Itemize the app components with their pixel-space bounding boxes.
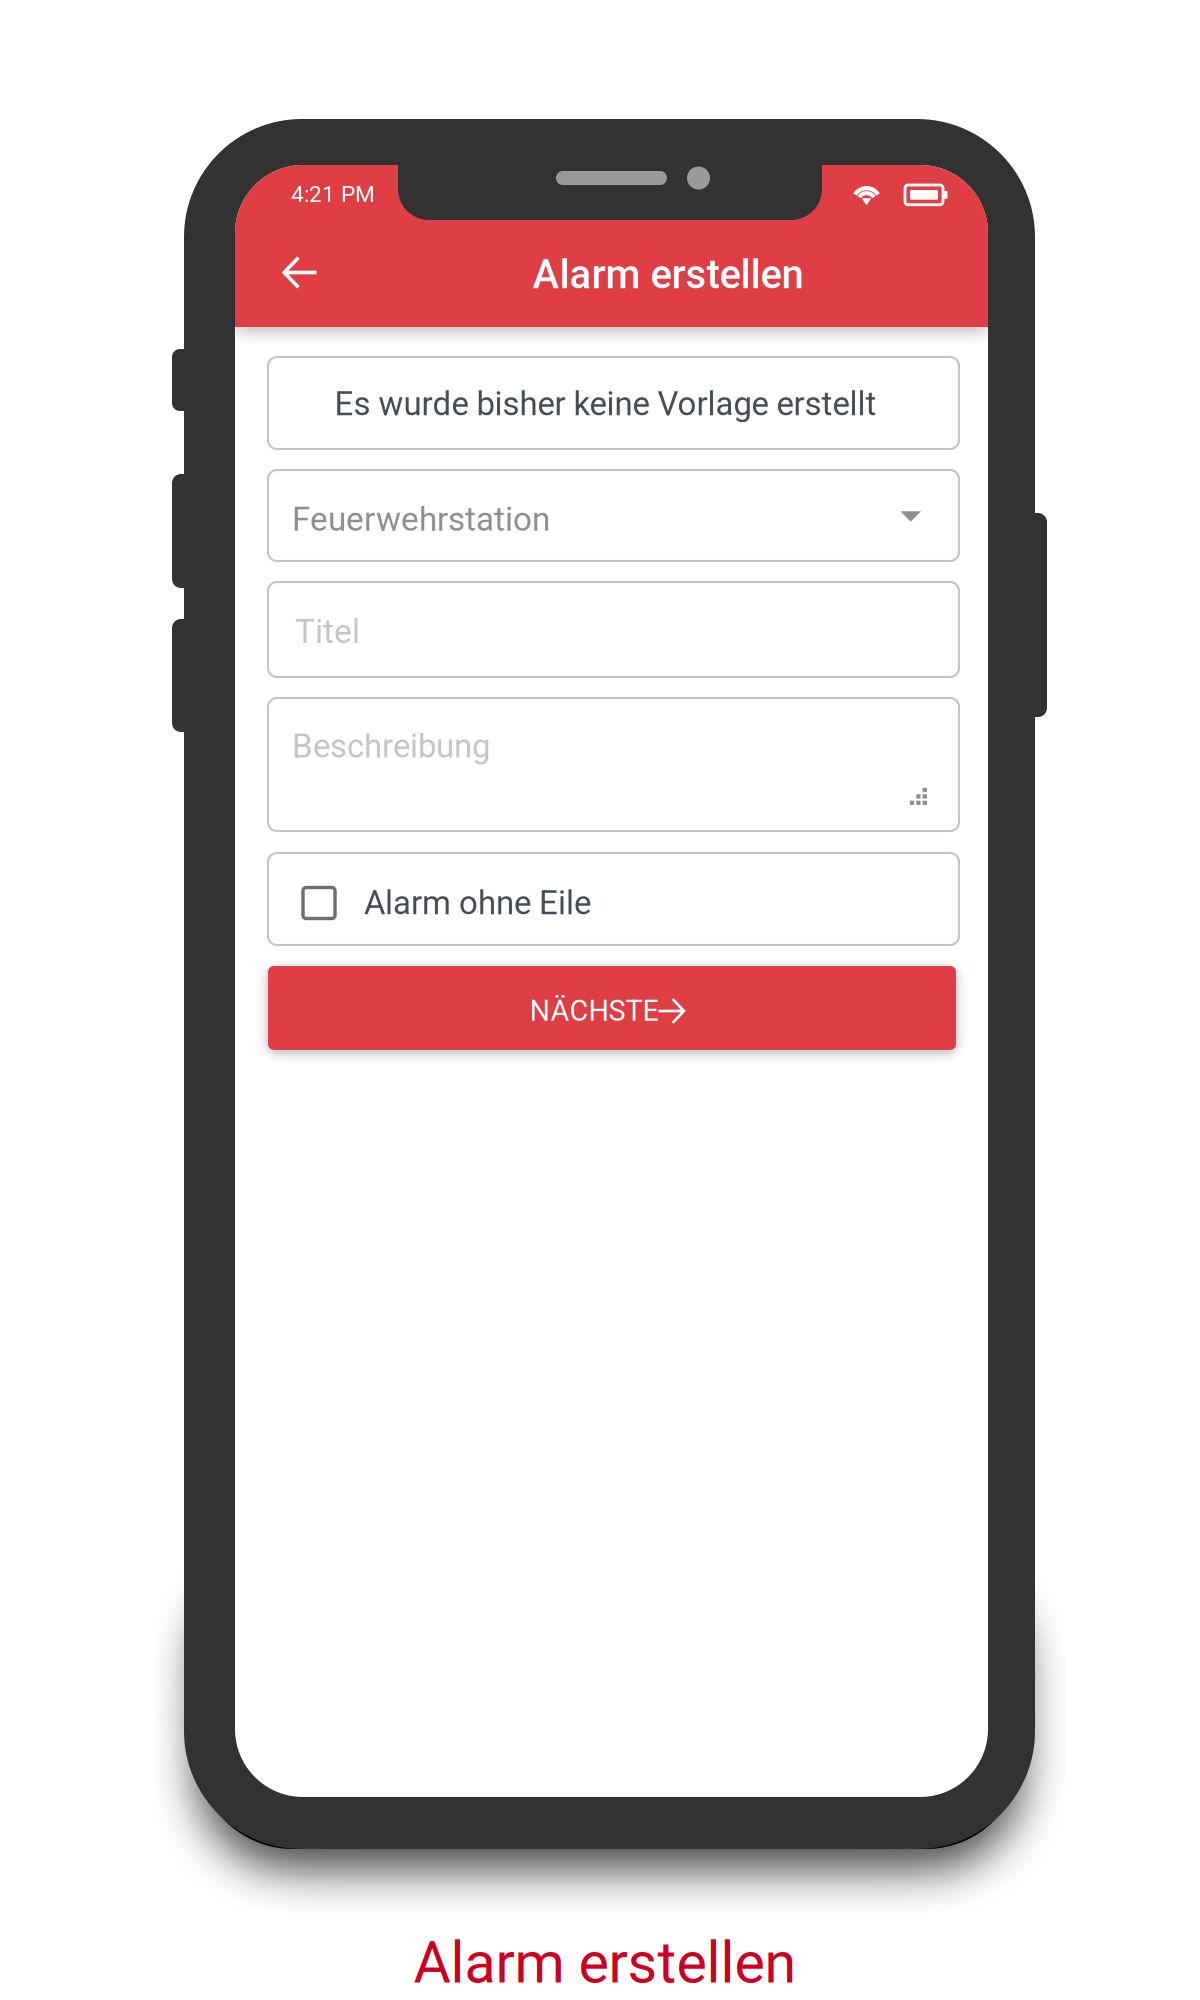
button[interactable]: Feuerwehrstation [268,470,959,561]
button[interactable]: Titel [268,582,959,677]
staticText: Titel [295,612,360,651]
staticText: Alarm ohne Eile [364,884,591,922]
button[interactable]: Back [235,218,365,327]
staticText: Alarm erstellen [413,1929,796,1997]
button[interactable]: Beschreibung [268,698,959,831]
button[interactable]: NÄCHSTE [268,966,956,1050]
staticText: Feuerwehrstation [292,500,550,539]
button[interactable]: Alarm ohne Eile [268,853,959,945]
staticText: 4:21 PM [291,181,375,208]
staticText: NÄCHSTE [529,994,658,1028]
button[interactable]: Es wurde bisher keine Vorlage erstellt [268,357,959,449]
staticText: Alarm erstellen [532,251,803,298]
staticText: Es wurde bisher keine Vorlage erstellt [334,385,876,423]
staticText: Beschreibung [292,727,490,766]
